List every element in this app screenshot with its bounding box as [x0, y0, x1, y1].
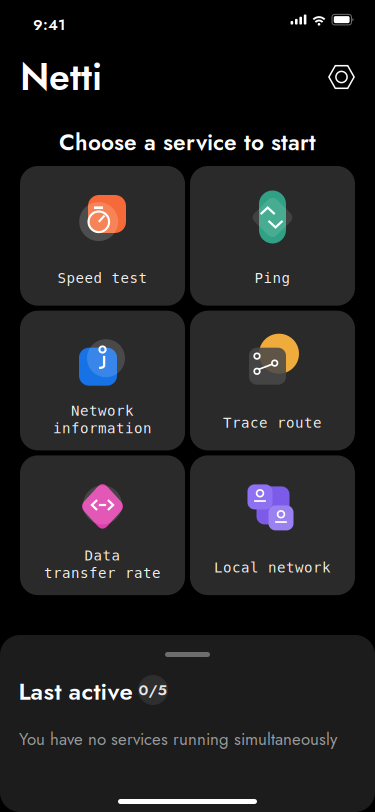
staticText: Data — [84, 547, 120, 564]
staticText: transfer rate — [44, 565, 161, 581]
staticText: Trace route — [223, 415, 322, 431]
staticText: Choose a service to start — [59, 126, 316, 159]
staticText: Speed test — [57, 270, 147, 286]
staticText: Ping — [254, 270, 290, 286]
button[interactable]: Network — [20, 311, 185, 450]
button[interactable]: Settings — [328, 64, 355, 90]
staticText: Netti — [20, 50, 102, 104]
button[interactable]: Local network — [190, 455, 355, 595]
staticText: Local network — [214, 559, 331, 576]
button[interactable]: Ping — [190, 166, 355, 306]
staticText: 9:41 — [33, 14, 65, 36]
staticText: You have no services running simultaneou… — [19, 727, 337, 751]
staticText: Network — [71, 403, 134, 419]
staticText: information — [53, 420, 152, 437]
button[interactable]: Trace route — [190, 311, 355, 450]
button[interactable]: Data — [20, 455, 185, 595]
staticText: Last active — [18, 674, 132, 709]
button[interactable]: Speed test — [20, 166, 185, 306]
staticText: 0/5 — [138, 679, 167, 701]
